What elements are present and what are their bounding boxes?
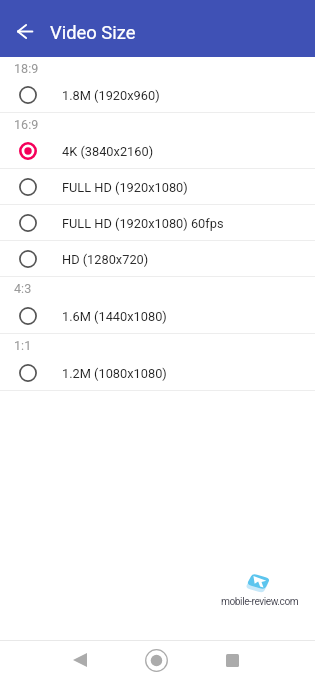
staticText: 18:9 [14,61,39,76]
staticText: HD (1280x720) [62,252,149,267]
button[interactable]: Home [139,643,173,677]
button[interactable]: Back [63,643,97,677]
button[interactable]: 1.2M (1080x1080) [0,355,315,391]
staticText: 4K (3840x2160) [62,144,154,159]
button[interactable]: 1.8M (1920x960) [0,77,315,113]
button[interactable]: Recents [215,643,249,677]
button[interactable]: FULL HD (1920x1080) [0,169,315,205]
button[interactable]: 1.6M (1440x1080) [0,298,315,334]
staticText: 4:3 [14,281,32,296]
staticText: 1:1 [14,338,32,353]
staticText: 1.6M (1440x1080) [62,309,167,324]
staticText: Video Size [50,22,136,44]
button[interactable]: 4K (3840x2160) [0,133,315,169]
staticText: 1.2M (1080x1080) [62,366,167,381]
staticText: FULL HD (1920x1080) [62,180,188,195]
button[interactable]: FULL HD (1920x1080) 60fps [0,205,315,241]
staticText: FULL HD (1920x1080) 60fps [62,216,224,231]
staticText: 16:9 [14,117,39,132]
staticText: 1.8M (1920x960) [62,88,160,103]
button[interactable]: Back [8,15,41,48]
button[interactable]: HD (1280x720) [0,241,315,277]
staticText: mobile-review.com [221,596,299,608]
